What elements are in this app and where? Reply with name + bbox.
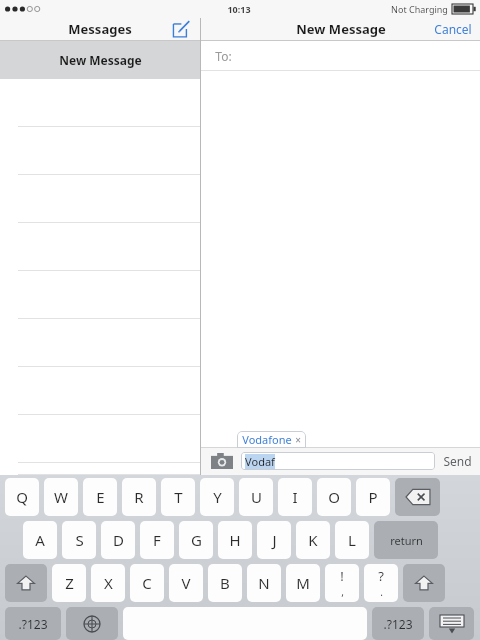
button[interactable]: Shift right [403, 564, 445, 602]
button[interactable]: To: [201, 41, 480, 70]
staticText: I [292, 487, 298, 507]
button[interactable]: I [278, 478, 312, 516]
staticText: X [104, 573, 113, 593]
button[interactable]: Hide keyboard [429, 607, 474, 640]
button[interactable]: R [122, 478, 156, 516]
button[interactable]: New Message [0, 41, 200, 79]
button[interactable]: .?123 [372, 607, 424, 640]
button[interactable]: V [169, 564, 203, 602]
staticText: R [134, 487, 144, 507]
button[interactable]: .?123 [5, 607, 61, 640]
staticText: P [368, 487, 378, 507]
staticText: K [308, 530, 318, 550]
button[interactable]: D [101, 521, 135, 559]
button[interactable]: S [62, 521, 96, 559]
staticText: S [75, 530, 84, 550]
staticText: Not Charging [391, 3, 448, 15]
staticText: J [272, 530, 277, 550]
staticText: New Message [296, 20, 386, 38]
staticText: Messages [68, 20, 132, 38]
staticText: Vodaf [245, 454, 275, 469]
staticText: Vodafone [242, 432, 292, 447]
staticText: ! [340, 567, 344, 585]
button[interactable]: N [247, 564, 281, 602]
staticText: F [153, 530, 161, 550]
button[interactable]: J [257, 521, 291, 559]
button[interactable] [0, 319, 200, 367]
button[interactable]: G [179, 521, 213, 559]
button[interactable]: Backspace [395, 478, 440, 516]
button[interactable]: W [44, 478, 78, 516]
button[interactable]: T [161, 478, 195, 516]
staticText: return [390, 533, 423, 548]
staticText: Cancel [434, 21, 472, 37]
staticText: U [251, 487, 262, 507]
staticText: To: [215, 48, 232, 64]
button[interactable]: F [140, 521, 174, 559]
button[interactable]: X [91, 564, 125, 602]
staticText: V [181, 573, 191, 593]
button[interactable]: Shift [5, 564, 47, 602]
button[interactable]: U [239, 478, 273, 516]
button[interactable] [0, 463, 200, 475]
button[interactable] [0, 127, 200, 175]
button[interactable]: A [23, 521, 57, 559]
button[interactable]: C [130, 564, 164, 602]
button[interactable] [0, 415, 200, 463]
staticText: W [54, 487, 68, 507]
staticText: O [328, 487, 340, 507]
staticText: .?123 [18, 616, 48, 632]
button[interactable]: P [356, 478, 390, 516]
button[interactable]: E [83, 478, 117, 516]
staticText: New Message [59, 52, 142, 68]
staticText: B [220, 573, 230, 593]
button[interactable]: Vodaf [241, 452, 435, 470]
button[interactable]: H [218, 521, 252, 559]
staticText: , [341, 585, 344, 599]
staticText: .?123 [383, 616, 413, 632]
button[interactable] [0, 79, 200, 127]
button[interactable]: B [208, 564, 242, 602]
staticText: Send [443, 453, 472, 469]
button[interactable]: Change keyboard [66, 607, 118, 640]
button[interactable]: Vodafone [242, 432, 301, 447]
staticText: Y [213, 487, 222, 507]
staticText: D [113, 530, 124, 550]
button[interactable] [0, 271, 200, 319]
button[interactable]: Y [200, 478, 234, 516]
staticText: × [295, 433, 301, 447]
button[interactable]: ? [364, 564, 398, 602]
staticText: ? [378, 567, 384, 585]
button[interactable]: Send [443, 453, 472, 469]
staticText: G [191, 530, 202, 550]
staticText: N [258, 573, 270, 593]
staticText: . [380, 585, 383, 599]
staticText: Q [16, 487, 28, 507]
staticText: E [96, 487, 105, 507]
button[interactable]: O [317, 478, 351, 516]
staticText: 10:13 [227, 3, 251, 15]
staticText: T [174, 487, 183, 507]
button[interactable]: Z [52, 564, 86, 602]
button[interactable] [0, 223, 200, 271]
button[interactable]: Compose new message [172, 20, 190, 38]
button[interactable]: ! [325, 564, 359, 602]
staticText: Z [65, 573, 74, 593]
button[interactable]: L [335, 521, 369, 559]
button[interactable]: Camera [209, 451, 235, 471]
staticText: M [296, 573, 310, 593]
staticText: A [35, 530, 45, 550]
button[interactable] [0, 367, 200, 415]
button[interactable]: K [296, 521, 330, 559]
button[interactable]: M [286, 564, 320, 602]
button[interactable]: Q [5, 478, 39, 516]
button[interactable]: Cancel [434, 21, 472, 37]
staticText: C [142, 573, 152, 593]
staticText: L [348, 530, 356, 550]
staticText: H [229, 530, 241, 550]
button[interactable]: return [374, 521, 438, 559]
button[interactable] [0, 175, 200, 223]
